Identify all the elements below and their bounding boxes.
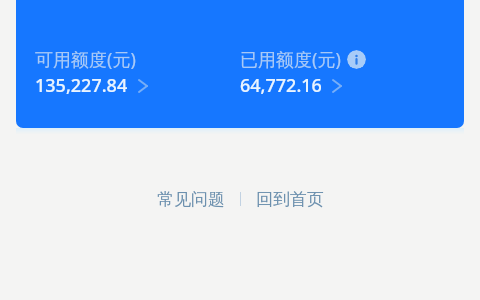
staticText: 已用额度(元) <box>240 47 341 72</box>
button[interactable]: 已用额度(元) <box>240 0 464 128</box>
staticText: 回到首页 <box>256 189 324 210</box>
button[interactable]: Info about used credit <box>347 50 366 69</box>
button[interactable]: 回到首页 <box>252 186 328 213</box>
staticText: 64,772.16 <box>240 73 322 98</box>
staticText: 常见问题 <box>157 189 225 210</box>
button[interactable]: 常见问题 <box>153 186 229 213</box>
staticText: 可用额度(元) <box>35 47 136 72</box>
staticText: 135,227.84 <box>35 73 128 98</box>
button[interactable]: 可用额度(元) <box>16 0 240 128</box>
